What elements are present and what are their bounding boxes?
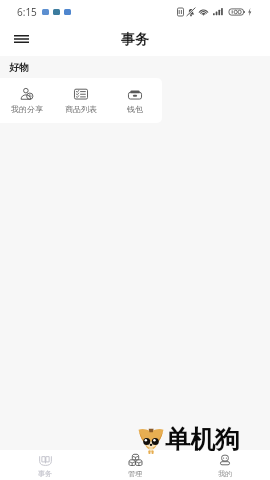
staticText: 商品列表	[65, 104, 97, 114]
button[interactable]: Menu	[8, 26, 34, 52]
staticText: 我的	[218, 469, 232, 478]
staticText: 管理	[128, 469, 142, 478]
staticText: 钱包	[127, 104, 143, 114]
button[interactable]: 商品列表	[54, 78, 108, 114]
button[interactable]: 钱包	[108, 78, 162, 114]
button[interactable]: 我的分享	[0, 78, 54, 114]
staticText: 事务	[38, 469, 52, 478]
staticText: 6:15	[17, 5, 37, 19]
button[interactable]: 我的	[180, 450, 270, 478]
staticText: 单机狗	[165, 424, 240, 455]
staticText: 事务	[121, 31, 149, 49]
button[interactable]: 事务	[0, 450, 90, 478]
staticText: 我的分享	[11, 104, 43, 114]
staticText: 好物	[9, 61, 29, 74]
button[interactable]: 管理	[90, 450, 180, 478]
